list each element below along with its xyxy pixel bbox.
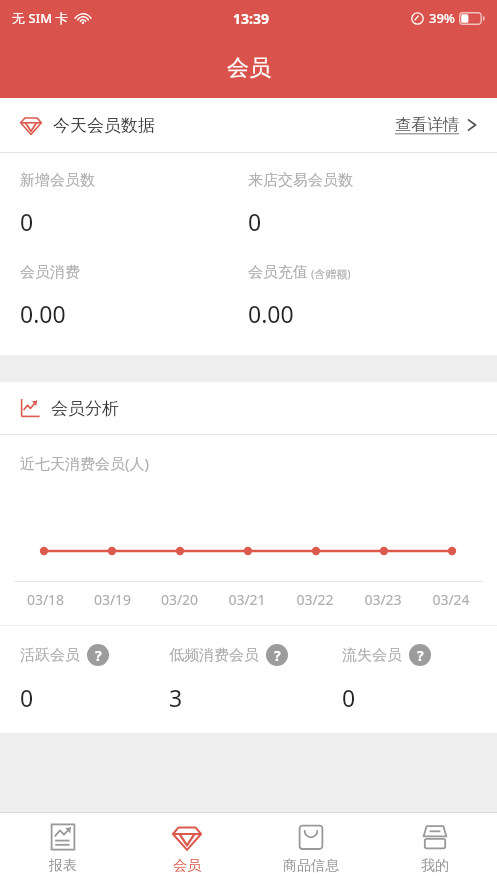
- staticText: 查看详情: [395, 115, 459, 135]
- staticText: 活跃会员: [20, 646, 80, 665]
- staticText: 商品信息: [283, 857, 339, 875]
- staticText: 3: [169, 682, 183, 713]
- button[interactable]: 今天会员数据: [0, 98, 497, 152]
- staticText: 0: [20, 206, 34, 237]
- staticText: 会员: [227, 54, 271, 82]
- staticText: 03/21: [213, 590, 281, 609]
- staticText: 今天会员数据: [53, 115, 155, 136]
- staticText: 39%: [429, 9, 455, 27]
- button[interactable]: 会员分析: [0, 382, 497, 434]
- staticText: 会员充值: [248, 263, 308, 282]
- staticText: 03/20: [146, 590, 213, 609]
- button[interactable]: 帮助 低频消费会员: [266, 644, 288, 666]
- button[interactable]: 报表: [0, 813, 125, 883]
- staticText: 0: [248, 206, 262, 237]
- staticText: 0: [20, 682, 34, 713]
- staticText: 0.00: [20, 298, 66, 329]
- staticText: 会员分析: [51, 398, 119, 419]
- staticText: ?: [95, 646, 102, 665]
- staticText: 03/24: [417, 590, 485, 609]
- staticText: ?: [417, 646, 424, 665]
- button[interactable]: 会员: [125, 813, 249, 883]
- staticText: 03/23: [349, 590, 417, 609]
- staticText: 新增会员数: [20, 171, 95, 190]
- staticText: 报表: [49, 857, 77, 875]
- staticText: 03/18: [12, 590, 79, 609]
- staticText: 低频消费会员: [169, 646, 259, 665]
- staticText: 会员消费: [20, 263, 80, 282]
- staticText: 我的: [421, 857, 449, 875]
- staticText: 13:39: [233, 9, 269, 28]
- button[interactable]: 商品信息: [249, 813, 373, 883]
- staticText: 03/22: [281, 590, 349, 609]
- staticText: 无 SIM 卡: [12, 9, 69, 27]
- button[interactable]: 帮助 活跃会员: [87, 644, 109, 666]
- staticText: 03/19: [79, 590, 146, 609]
- staticText: 0: [342, 682, 356, 713]
- button[interactable]: 我的: [373, 813, 497, 883]
- staticText: ?: [274, 646, 281, 665]
- staticText: 来店交易会员数: [248, 171, 353, 190]
- staticText: 会员: [173, 857, 201, 875]
- button[interactable]: 帮助 流失会员: [409, 644, 431, 666]
- staticText: 0.00: [248, 298, 294, 329]
- staticText: 近七天消费会员(人): [20, 453, 150, 473]
- staticText: (含赠额): [311, 266, 351, 281]
- staticText: 流失会员: [342, 646, 402, 665]
